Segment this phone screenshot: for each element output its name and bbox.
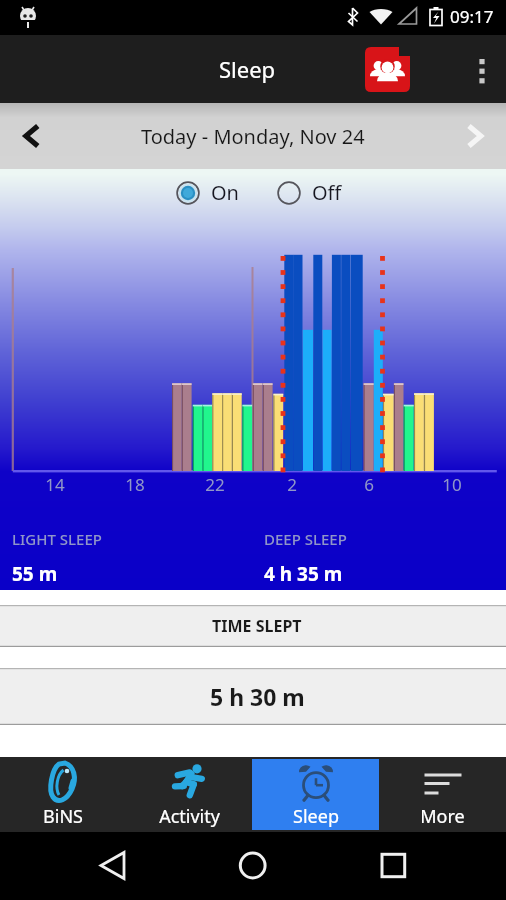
button[interactable]: Activity [126, 759, 252, 830]
staticText: 14 [45, 473, 65, 496]
staticText: 6 [364, 473, 374, 496]
button[interactable]: On [176, 179, 239, 206]
staticText: Sleep [293, 804, 339, 829]
staticText: Today - Monday, Nov 24 [141, 123, 365, 150]
button[interactable]: Previous day [0, 103, 64, 169]
button[interactable]: TIME SLEPT [0, 605, 506, 647]
button[interactable]: More options [458, 35, 506, 103]
button[interactable]: Sleep [252, 759, 379, 830]
staticText: Sleep [219, 54, 276, 84]
staticText: 4 h 35 m [264, 561, 343, 587]
button[interactable]: More [379, 759, 506, 830]
staticText: Off [312, 179, 342, 206]
button[interactable]: Off [277, 179, 342, 206]
staticText: BiNS [43, 804, 83, 829]
button[interactable]: Friends [358, 40, 416, 98]
staticText: 18 [125, 473, 145, 496]
staticText: TIME SLEPT [212, 615, 302, 637]
staticText: 09:17 [450, 5, 494, 28]
staticText: Activity [159, 804, 220, 829]
staticText: 55 m [12, 561, 58, 587]
button[interactable]: BiNS [0, 759, 126, 830]
staticText: 22 [205, 473, 225, 496]
staticText: DEEP SLEEP [264, 529, 347, 549]
staticText: LIGHT SLEEP [12, 529, 102, 549]
button[interactable]: Next day [442, 103, 506, 169]
staticText: 10 [442, 473, 462, 496]
button[interactable]: 5 h 30 m [0, 668, 506, 725]
staticText: More [420, 804, 465, 829]
staticText: On [211, 179, 239, 206]
staticText: 2 [287, 473, 297, 496]
staticText: 5 h 30 m [210, 681, 305, 712]
